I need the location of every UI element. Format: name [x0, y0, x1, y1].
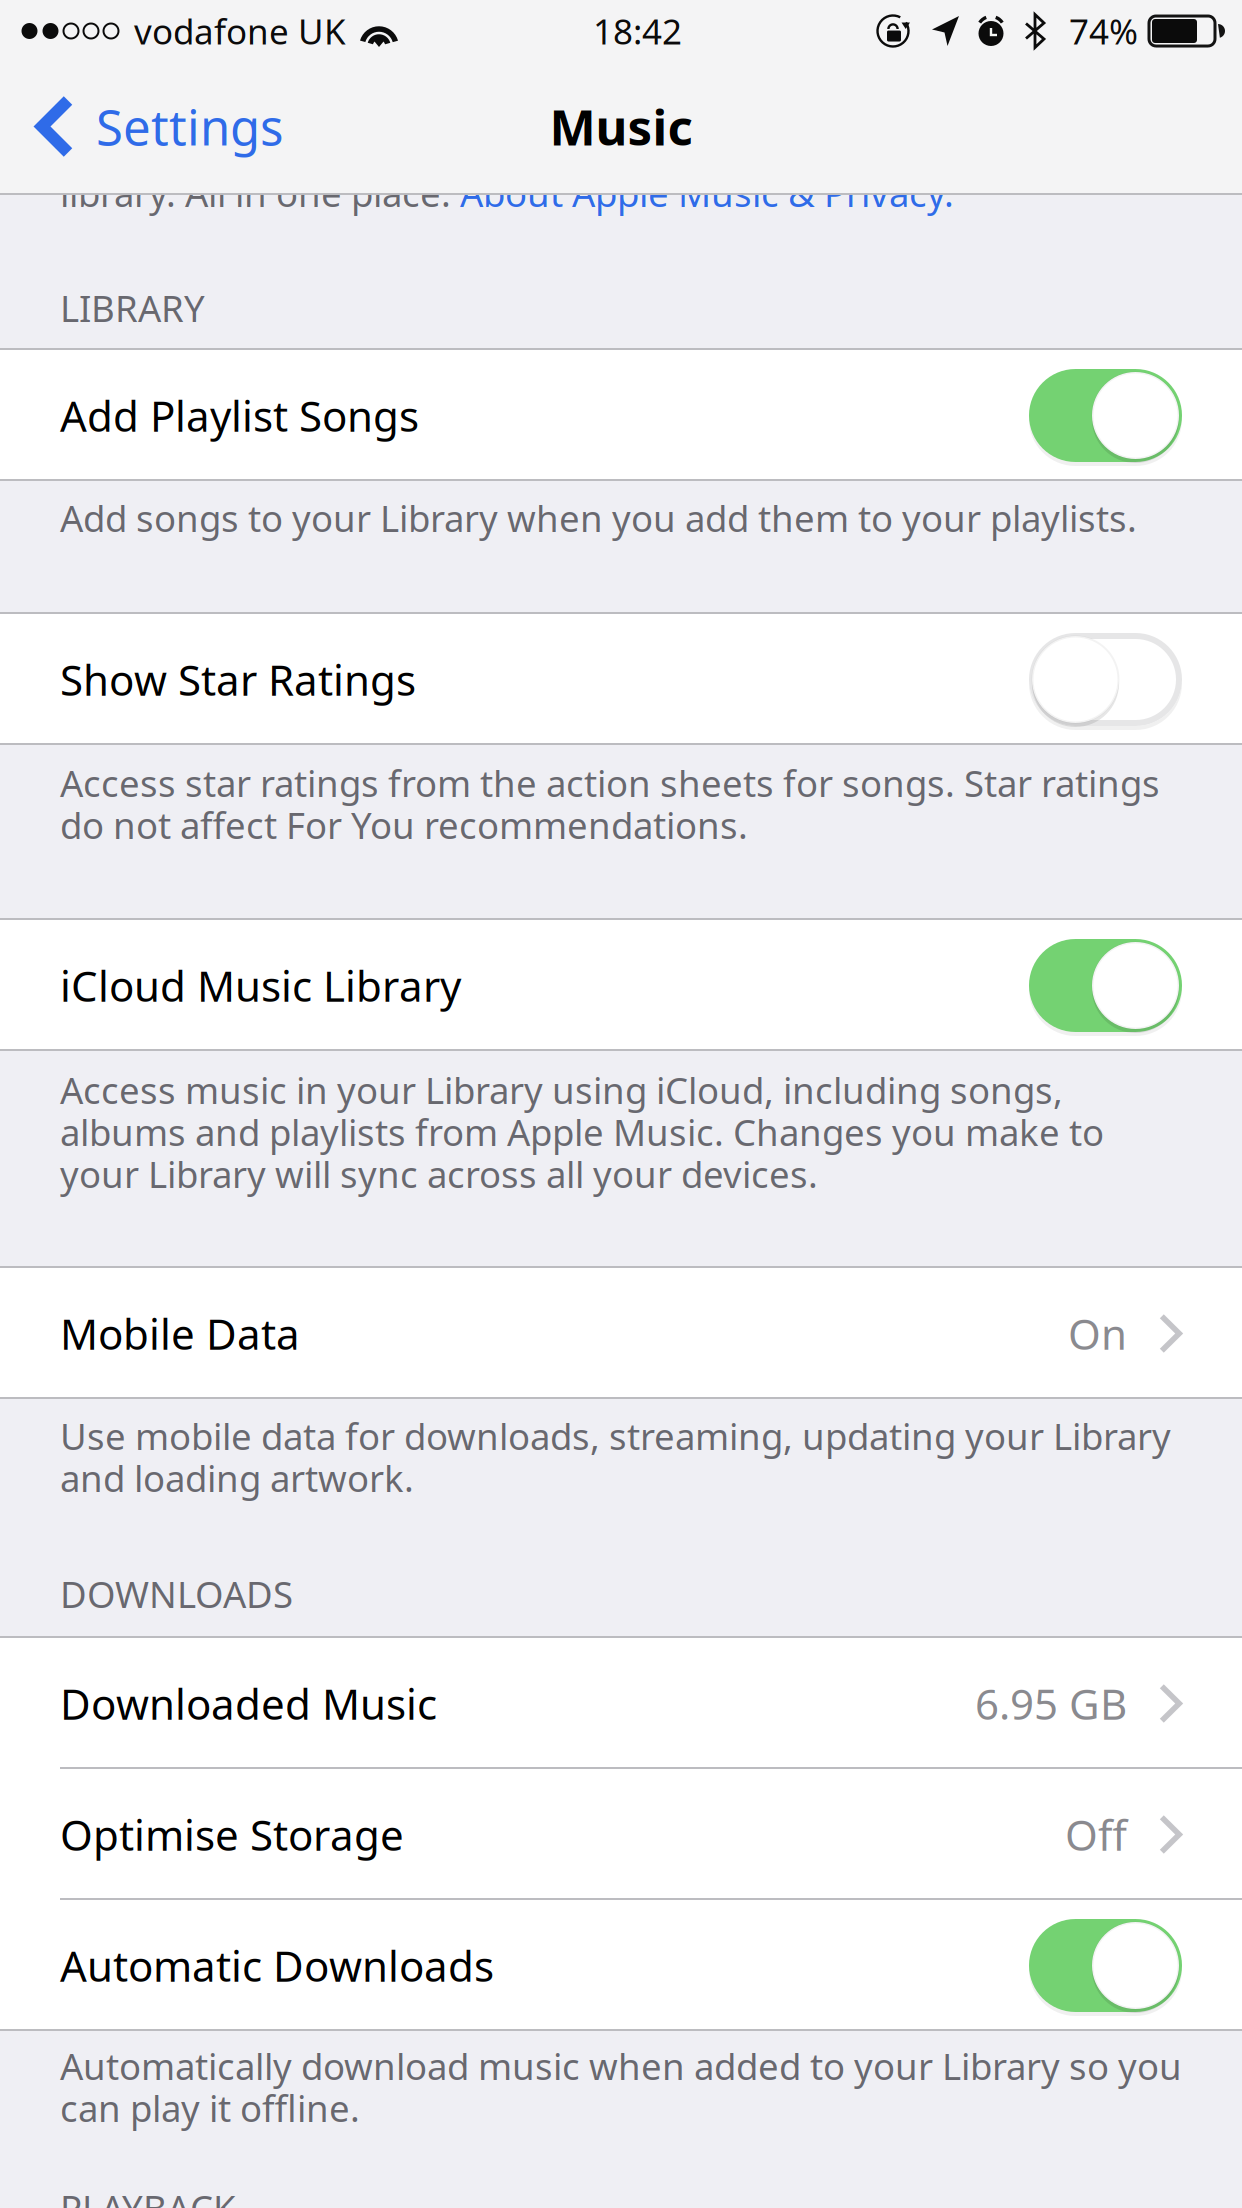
staticText: do not affect For You recommendations. [60, 800, 748, 850]
staticText: library. All in one place. [60, 168, 460, 218]
staticText: Automatic Downloads [60, 1937, 494, 1994]
staticText: and loading artwork. [60, 1453, 414, 1503]
button[interactable]: Show Star Ratings [0, 614, 1242, 745]
staticText: Show Star Ratings [60, 651, 416, 708]
staticText: Access music in your Library using iClou… [60, 1065, 1063, 1115]
button[interactable]: Optimise Storage [0, 1769, 1242, 1900]
staticText: albums and playlists from Apple Music. C… [60, 1107, 1104, 1157]
staticText: vodafone UK [134, 7, 346, 55]
staticText: 74% [1069, 7, 1138, 55]
staticText: 18:42 [593, 7, 682, 55]
button[interactable]: Mobile Data [0, 1268, 1242, 1399]
staticText: Use mobile data for downloads, streaming… [60, 1411, 1171, 1461]
staticText: Add songs to your Library when you add t… [60, 493, 1137, 543]
staticText: Optimise Storage [60, 1806, 404, 1863]
button[interactable]: iCloud Music Library [0, 920, 1242, 1051]
button[interactable]: Automatic Downloads [0, 1900, 1242, 2031]
staticText: On [1068, 1305, 1127, 1362]
staticText: 6.95 GB [975, 1675, 1127, 1732]
staticText: Settings [96, 93, 284, 160]
staticText: your Library will sync across all your d… [60, 1149, 818, 1199]
staticText: Add Playlist Songs [60, 387, 419, 444]
button[interactable]: Settings [0, 61, 304, 192]
staticText: iCloud Music Library [60, 957, 461, 1014]
staticText: Off [1065, 1806, 1127, 1863]
staticText: Music [549, 93, 692, 160]
staticText: LIBRARY [60, 283, 205, 333]
staticText: can play it offline. [60, 2083, 360, 2133]
button[interactable]: Add Playlist Songs [0, 350, 1242, 481]
button[interactable]: Downloaded Music [0, 1638, 1242, 1769]
staticText: DOWNLOADS [60, 1569, 293, 1619]
staticText: PLAYBACK [60, 2183, 236, 2208]
staticText: Access star ratings from the action shee… [60, 758, 1160, 808]
staticText: Mobile Data [60, 1305, 300, 1362]
staticText: About Apple Music & Privacy. [460, 168, 954, 218]
staticText: Automatically download music when added … [60, 2041, 1182, 2091]
staticText: Downloaded Music [60, 1675, 437, 1732]
